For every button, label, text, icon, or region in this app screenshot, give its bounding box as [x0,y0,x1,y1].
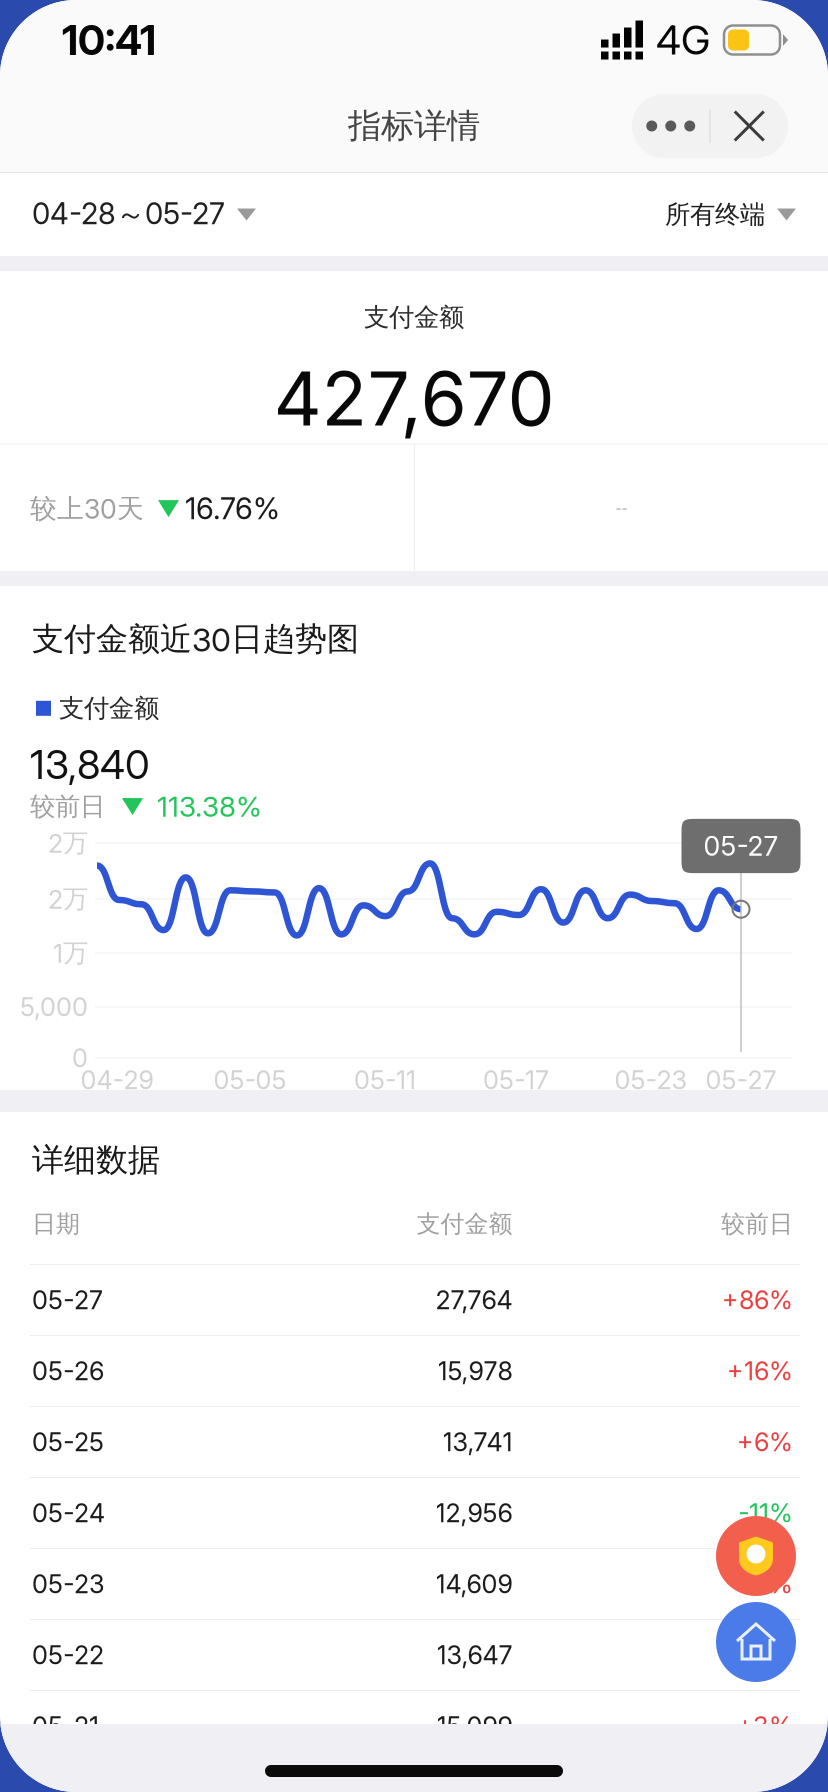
staticText: 支付金额 [416,1209,512,1239]
staticText: 15,978 [437,1356,512,1386]
button[interactable]: 05-27 [0,1264,828,1335]
staticText: 较前日 [721,1209,793,1239]
staticText: 15,099 [436,1711,512,1741]
button[interactable]: 所有终端 [665,182,796,246]
staticText: +16% [727,1356,793,1386]
staticText: 13,840 [30,740,150,789]
staticText: +6% [737,1427,793,1457]
staticText: 05-22 [32,1640,104,1670]
staticText: 05-25 [32,1427,104,1457]
staticText: 04-28～05-27 [32,196,225,233]
button[interactable]: 05-22 [0,1619,828,1690]
staticText: 05-27 [705,1065,776,1095]
staticText: 所有终端 [665,198,765,230]
staticText: 2万 [48,883,88,915]
staticText: 05-27 [32,1285,103,1315]
button[interactable]: 05-23 [0,1548,828,1619]
button[interactable]: 05-26 [0,1335,828,1406]
staticText: 0 [72,1043,88,1073]
button[interactable]: 04-28～05-27 [32,180,256,249]
staticText: 427,670 [273,353,554,444]
button[interactable]: 05-21 [0,1690,828,1761]
staticText: 支付金额 [59,692,159,724]
staticText: 05-11 [354,1065,416,1095]
button[interactable]: 05-25 [0,1406,828,1477]
staticText: 支付金额 [364,301,464,333]
staticText: 05-27 [703,830,778,862]
staticText: 16.76% [185,491,280,526]
staticText: 14,609 [435,1569,512,1599]
staticText: +3% [737,1711,793,1741]
staticText: +9% [737,1640,793,1670]
staticText: 113.38% [157,790,262,823]
staticText: 日期 [32,1209,80,1239]
staticText: 05-26 [32,1356,104,1386]
staticText: 2万 [48,827,88,859]
staticText: +86% [722,1285,793,1315]
staticText: 05-17 [483,1065,549,1095]
staticText: 27,764 [435,1285,512,1315]
button[interactable]: 05-24 [0,1477,828,1548]
staticText: 较上30天 [30,492,144,525]
staticText: 指标详情 [348,105,480,147]
staticText: 13,741 [442,1427,512,1457]
button[interactable]: Home [716,1602,796,1682]
staticText: -- [615,501,627,517]
staticText: 10:41 [62,15,156,65]
staticText: 04-29 [80,1065,153,1095]
staticText: 5,000 [20,992,88,1022]
button[interactable]: Close [711,94,788,158]
staticText: 4G [656,16,710,64]
button[interactable]: More [632,94,709,158]
staticText: 05-24 [32,1498,105,1528]
staticText: 1万 [53,937,88,969]
staticText: 05-21 [32,1711,99,1741]
staticText: 05-23 [32,1569,105,1599]
staticText: -11% [738,1498,793,1528]
button[interactable]: Security [716,1516,796,1596]
staticText: 05-23 [614,1065,687,1095]
staticText: 详细数据 [32,1140,160,1180]
staticText: 13,647 [436,1640,512,1670]
staticText: 05-05 [213,1065,286,1095]
staticText: +5% [737,1569,793,1599]
staticText: 12,956 [435,1498,512,1528]
staticText: 支付金额近30日趋势图 [32,619,359,659]
staticText: 较前日 [30,791,105,822]
